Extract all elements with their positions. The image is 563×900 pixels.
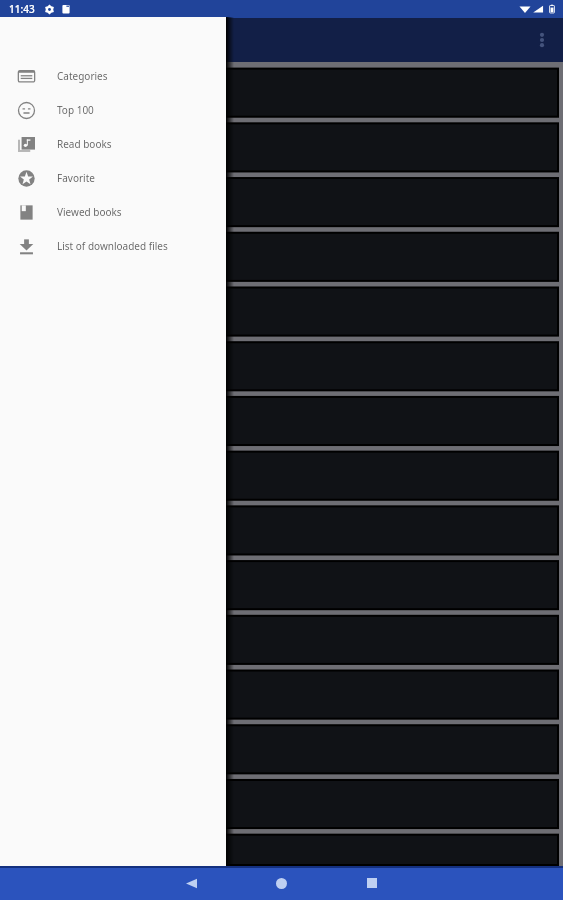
- button[interactable]: [0, 722, 563, 777]
- button[interactable]: Recent apps: [356, 867, 388, 899]
- button[interactable]: List of downloaded files: [0, 229, 226, 263]
- button[interactable]: [0, 502, 563, 557]
- button[interactable]: More options: [527, 25, 557, 55]
- staticText: List of downloaded files: [57, 239, 168, 253]
- button[interactable]: [0, 447, 563, 502]
- button[interactable]: [0, 777, 563, 832]
- button[interactable]: [0, 667, 563, 722]
- button[interactable]: Read books: [0, 127, 226, 161]
- button[interactable]: [0, 227, 563, 282]
- button[interactable]: [0, 117, 563, 172]
- button[interactable]: [0, 392, 563, 447]
- button[interactable]: [0, 62, 563, 117]
- button[interactable]: Top 100: [0, 93, 226, 127]
- button[interactable]: Back: [175, 867, 207, 899]
- staticText: Favorite: [57, 171, 95, 185]
- staticText: Viewed books: [57, 205, 122, 219]
- button[interactable]: [0, 557, 563, 612]
- button[interactable]: [0, 282, 563, 337]
- staticText: 11:43: [9, 2, 35, 16]
- button[interactable]: Home: [265, 867, 297, 899]
- button[interactable]: [0, 832, 563, 866]
- staticText: Top 100: [57, 103, 94, 117]
- button[interactable]: Categories: [0, 59, 226, 93]
- button[interactable]: [0, 337, 563, 392]
- button[interactable]: [0, 172, 563, 227]
- staticText: Read books: [57, 137, 112, 151]
- button[interactable]: [0, 612, 563, 667]
- button[interactable]: Favorite: [0, 161, 226, 195]
- button[interactable]: Viewed books: [0, 195, 226, 229]
- staticText: Categories: [57, 69, 108, 83]
